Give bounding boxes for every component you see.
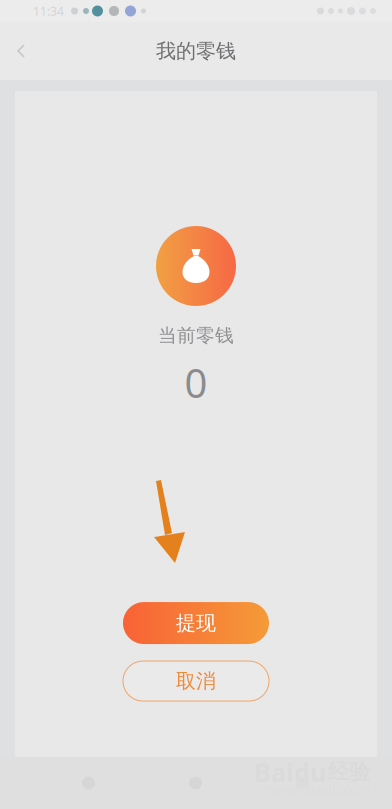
staticText: 我的零钱 [156, 39, 236, 63]
button[interactable]: 取消 [123, 661, 269, 701]
staticText: 0 [184, 356, 207, 409]
staticText: Baidu [254, 755, 326, 789]
button[interactable]: Back [2, 26, 42, 76]
button[interactable]: 提现 [123, 602, 269, 644]
staticText: 取消 [176, 669, 216, 693]
staticText: 提现 [176, 611, 216, 635]
staticText: 11:34 [33, 3, 64, 19]
staticText: 当前零钱 [158, 324, 234, 347]
